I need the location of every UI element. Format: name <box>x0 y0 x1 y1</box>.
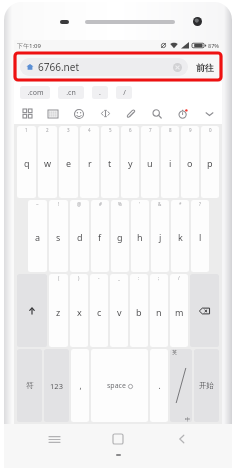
staticText: 1 <box>25 127 28 133</box>
button[interactable]: .com <box>20 86 50 99</box>
button[interactable]: - <box>90 274 108 347</box>
staticText: n <box>156 306 162 318</box>
button[interactable]: ; <box>150 274 168 347</box>
staticText: k <box>178 231 183 243</box>
staticText: b <box>136 306 142 318</box>
staticText: ~ <box>36 201 39 207</box>
button[interactable]: 前往 <box>194 62 216 73</box>
button[interactable]: Home <box>86 424 150 454</box>
staticText: / <box>123 88 126 98</box>
staticText: y <box>128 157 133 169</box>
button[interactable]: ! <box>49 200 68 272</box>
staticText: 3 <box>67 127 70 133</box>
button[interactable]: # <box>91 200 109 272</box>
button[interactable]: Space <box>91 349 148 422</box>
staticText: , <box>79 380 82 391</box>
button[interactable]: / <box>170 274 188 347</box>
staticText: c <box>97 306 102 318</box>
staticText: 123 <box>50 381 63 391</box>
button[interactable]: / <box>116 86 132 99</box>
button[interactable]: , <box>71 349 89 422</box>
button[interactable]: .cn <box>58 86 84 99</box>
button[interactable]: . <box>92 86 108 99</box>
button[interactable]: 6766.net <box>20 58 188 76</box>
button[interactable]: ) <box>70 274 88 347</box>
button[interactable]: % <box>111 200 129 272</box>
button[interactable]: Back <box>150 424 214 454</box>
staticText: d <box>77 231 83 243</box>
staticText: 87% <box>208 42 219 49</box>
button[interactable]: 9 <box>181 126 199 198</box>
button[interactable]: Clear <box>173 63 182 72</box>
button[interactable]: 123 <box>44 349 69 422</box>
staticText: 符 <box>26 381 34 390</box>
button[interactable]: 开始 <box>194 349 219 422</box>
button[interactable]: 8 <box>161 126 179 198</box>
staticText: a <box>35 231 41 243</box>
staticText: q <box>24 157 30 169</box>
staticText: - <box>98 275 100 281</box>
staticText: : <box>138 275 140 281</box>
staticText: 2 <box>46 127 49 133</box>
staticText: space <box>107 381 126 391</box>
button[interactable]: Language <box>170 349 192 422</box>
button[interactable]: Cursor <box>92 103 118 124</box>
staticText: r <box>88 157 92 169</box>
button[interactable]: ( <box>49 274 68 347</box>
button[interactable]: & <box>151 200 169 272</box>
staticText: t <box>108 157 112 169</box>
staticText: % <box>118 201 122 207</box>
button[interactable]: Attach <box>118 103 144 124</box>
button[interactable]: Collapse <box>196 103 222 124</box>
button[interactable]: 符 <box>17 349 42 422</box>
staticText: ' <box>139 201 141 207</box>
button[interactable]: 0 <box>201 126 219 198</box>
staticText: s <box>56 231 61 243</box>
staticText: 7 <box>149 127 152 133</box>
button[interactable]: Keyboard <box>40 103 66 124</box>
staticText: u <box>147 157 153 169</box>
button[interactable]: 1 <box>17 126 36 198</box>
button[interactable]: : <box>130 274 148 347</box>
staticText: l <box>199 231 202 243</box>
button[interactable]: Backspace <box>190 274 219 347</box>
staticText: & <box>158 201 162 207</box>
button[interactable]: 7 <box>141 126 159 198</box>
staticText: . <box>99 88 101 98</box>
button[interactable]: 4 <box>80 126 99 198</box>
button[interactable]: Search <box>144 103 170 124</box>
staticText: 英 <box>172 349 177 355</box>
button[interactable]: . <box>150 349 168 422</box>
button[interactable]: Keypad <box>14 103 40 124</box>
staticText: 4 <box>88 127 91 133</box>
staticText: 5 <box>109 127 112 133</box>
button[interactable]: 6 <box>121 126 139 198</box>
staticText: .com <box>27 88 44 98</box>
button[interactable]: _ <box>110 274 128 347</box>
button[interactable]: Shift <box>17 274 47 347</box>
staticText: # <box>99 201 102 207</box>
button[interactable]: * <box>171 200 189 272</box>
staticText: @ <box>77 201 82 207</box>
button[interactable]: Menu <box>22 424 86 454</box>
staticText: o <box>187 157 193 169</box>
button[interactable]: ~ <box>28 200 47 272</box>
staticText: ? <box>199 201 201 207</box>
button[interactable]: ? <box>191 200 209 272</box>
button[interactable]: 5 <box>101 126 119 198</box>
staticText: v <box>117 306 122 318</box>
button[interactable]: Recent <box>170 103 196 124</box>
staticText: _ <box>118 275 120 281</box>
staticText: z <box>56 306 61 318</box>
button[interactable]: @ <box>70 200 89 272</box>
staticText: 开始 <box>199 381 214 390</box>
staticText: i <box>169 157 172 169</box>
staticText: ) <box>78 275 80 281</box>
button[interactable]: 2 <box>38 126 57 198</box>
button[interactable]: Emoji <box>66 103 92 124</box>
staticText: * <box>179 201 182 207</box>
staticText: x <box>77 306 82 318</box>
button[interactable]: ' <box>131 200 149 272</box>
staticText: .cn <box>66 88 76 98</box>
button[interactable]: 3 <box>59 126 78 198</box>
